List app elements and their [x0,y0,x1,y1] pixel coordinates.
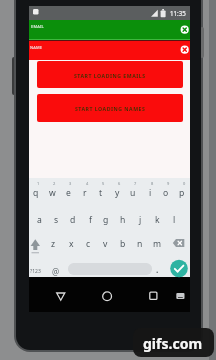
staticText: w [49,187,56,199]
staticText: f [89,214,92,226]
staticText: . [156,264,159,276]
staticText: h [120,214,126,226]
button[interactable] [115,208,131,232]
staticText: y [115,187,120,199]
button[interactable] [170,232,189,255]
button[interactable] [52,287,70,305]
staticText: gifs.com [143,334,203,353]
staticText: 6 [118,181,121,186]
staticText: e [66,187,71,199]
button[interactable] [178,22,192,37]
staticText: u [130,187,136,199]
button[interactable] [149,232,165,255]
staticText: 0 [183,181,186,186]
staticText: 9 [167,181,170,186]
button[interactable] [178,42,192,57]
button[interactable] [132,208,148,232]
staticText: r [83,187,87,199]
button[interactable] [93,180,109,204]
staticText: p [179,187,185,199]
button[interactable] [142,180,158,204]
button[interactable] [31,208,47,232]
staticText: s [54,214,59,226]
staticText: i [149,187,152,199]
button[interactable] [166,208,182,232]
button[interactable] [28,257,45,277]
staticText: t [99,187,103,199]
staticText: d [70,214,76,226]
button[interactable] [80,232,96,255]
button[interactable] [65,208,81,232]
staticText: 7 [134,181,137,186]
button[interactable] [172,288,189,304]
staticText: a [37,214,42,226]
staticText: NAME [30,45,43,50]
button[interactable] [82,208,98,232]
staticText: o [163,187,169,199]
staticText: 8 [151,181,154,186]
button[interactable] [29,20,190,39]
staticText: l [173,214,176,226]
staticText: g [103,214,109,226]
staticText: 11:35 [170,9,186,17]
button[interactable] [45,232,61,255]
button[interactable]: START LOADING NAMES [37,94,183,122]
button[interactable] [144,287,162,305]
button[interactable] [109,180,125,204]
staticText: m [153,238,162,250]
staticText: x [69,238,74,250]
button[interactable] [44,180,60,204]
staticText: ?123 [30,268,41,275]
button[interactable] [115,232,131,255]
button[interactable] [158,180,174,204]
staticText: j [139,214,142,226]
button[interactable] [29,41,190,60]
staticText: 4 [86,181,89,186]
staticText: c [86,238,91,250]
staticText: EMAIL [31,24,44,29]
button[interactable] [98,208,114,232]
button[interactable] [97,232,113,255]
button[interactable] [63,232,79,255]
staticText: 5 [102,181,105,186]
button[interactable] [98,287,116,305]
button[interactable] [174,180,190,204]
staticText: n [137,238,143,250]
staticText: 2 [53,181,56,186]
staticText: @ [52,266,60,277]
button[interactable] [149,208,165,232]
staticText: 1 [37,181,40,186]
staticText: START LOADING NAMES [75,105,146,112]
staticText: START LOADING EMAILS [74,72,146,79]
button[interactable]: gifs.com [133,328,214,357]
button[interactable] [170,258,188,277]
staticText: v [103,238,108,250]
button[interactable] [125,180,141,204]
staticText: z [51,238,56,250]
button[interactable] [132,232,148,255]
button[interactable] [60,180,76,204]
button[interactable] [48,208,64,232]
button[interactable] [28,232,45,255]
button[interactable] [28,180,44,204]
staticText: 3 [69,181,72,186]
button[interactable]: START LOADING EMAILS [37,61,183,88]
staticText: k [155,214,160,226]
button[interactable] [77,180,93,204]
staticText: b [120,238,126,250]
staticText: q [33,187,39,199]
